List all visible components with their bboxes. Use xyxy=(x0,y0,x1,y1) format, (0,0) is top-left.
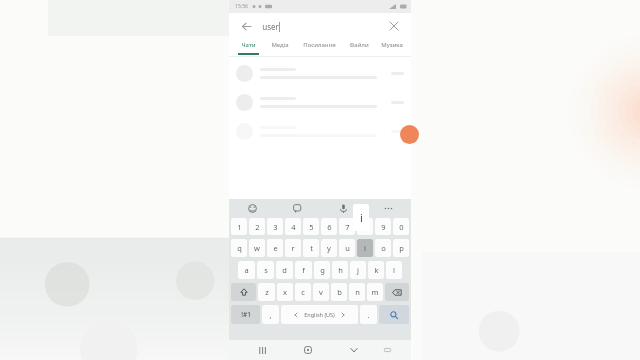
button[interactable]: 3 xyxy=(267,218,283,235)
button[interactable]: !#1 xyxy=(231,305,260,324)
button[interactable]: Back xyxy=(237,17,255,35)
button[interactable]: 0 xyxy=(393,218,409,235)
button[interactable]: a xyxy=(238,261,255,279)
button[interactable]: l xyxy=(386,261,402,279)
staticText: 6 xyxy=(327,222,332,232)
button[interactable]: Recents xyxy=(254,342,270,358)
button[interactable] xyxy=(229,88,411,117)
button[interactable]: j xyxy=(350,261,366,279)
staticText: i xyxy=(364,243,366,253)
staticText: 3 xyxy=(273,222,278,232)
button[interactable]: Voice input xyxy=(336,201,350,215)
button[interactable]: i xyxy=(357,239,373,257)
staticText: p xyxy=(399,243,404,253)
button[interactable]: e xyxy=(267,239,283,257)
staticText: 2 xyxy=(255,222,260,232)
button[interactable]: Keyboard xyxy=(380,343,394,357)
button[interactable]: c xyxy=(295,283,311,301)
button[interactable]: 9 xyxy=(375,218,391,235)
button[interactable]: f xyxy=(295,261,312,279)
button[interactable]: 1 xyxy=(231,218,247,235)
button[interactable]: 7 xyxy=(339,218,355,235)
staticText: r xyxy=(291,243,295,253)
button[interactable]: . xyxy=(360,305,377,324)
button[interactable]: r xyxy=(285,239,301,257)
staticText: x xyxy=(283,287,287,297)
button[interactable]: Clear search xyxy=(385,17,403,35)
button[interactable]: v xyxy=(313,283,329,301)
staticText: !#1 xyxy=(241,310,251,319)
staticText: a xyxy=(244,265,249,275)
button[interactable]: 6 xyxy=(321,218,337,235)
button[interactable]: Медіа xyxy=(264,39,296,56)
button[interactable]: k xyxy=(368,261,384,279)
button[interactable]: w xyxy=(249,239,265,257)
button[interactable] xyxy=(229,117,411,146)
button[interactable]: p xyxy=(393,239,409,257)
button[interactable]: Чати xyxy=(232,39,264,56)
button[interactable]: z xyxy=(258,283,275,301)
button[interactable]: Stickers xyxy=(290,201,304,215)
staticText: q xyxy=(237,243,242,253)
button[interactable]: Посилання xyxy=(296,39,342,56)
staticText: . xyxy=(367,310,370,320)
button[interactable] xyxy=(229,59,411,88)
button[interactable]: Backspace xyxy=(385,283,409,301)
button[interactable]: English (US) xyxy=(281,305,358,324)
button[interactable]: b xyxy=(331,283,347,301)
staticText: Посилання xyxy=(303,41,336,49)
staticText: z xyxy=(265,287,269,297)
staticText: m xyxy=(371,287,379,297)
button[interactable]: d xyxy=(276,261,293,279)
button[interactable]: Emoji xyxy=(245,201,259,215)
staticText: user xyxy=(262,21,279,32)
button[interactable]: 5 xyxy=(303,218,319,235)
button[interactable]: g xyxy=(314,261,330,279)
staticText: 7 xyxy=(345,222,350,232)
button[interactable]: m xyxy=(367,283,383,301)
button[interactable]: Файли xyxy=(342,39,375,56)
staticText: Медіа xyxy=(271,41,289,49)
staticText: h xyxy=(338,265,343,275)
button[interactable]: 4 xyxy=(285,218,301,235)
staticText: y xyxy=(327,243,331,253)
button[interactable]: n xyxy=(349,283,365,301)
staticText: 5 xyxy=(309,222,314,232)
staticText: Чати xyxy=(241,41,256,49)
staticText: g xyxy=(320,265,325,275)
button[interactable]: t xyxy=(303,239,319,257)
staticText: 15:56 xyxy=(235,3,248,10)
staticText: 4 xyxy=(291,222,296,232)
button[interactable]: 2 xyxy=(249,218,265,235)
staticText: c xyxy=(301,287,305,297)
button[interactable]: Shift xyxy=(231,283,256,301)
staticText: , xyxy=(269,310,272,320)
staticText: j xyxy=(357,265,359,275)
staticText: v xyxy=(319,287,323,297)
button[interactable]: u xyxy=(339,239,355,257)
button[interactable]: Home xyxy=(300,342,316,358)
button[interactable]: Музика xyxy=(375,39,408,56)
button[interactable]: More options xyxy=(381,201,395,215)
button[interactable]: x xyxy=(277,283,293,301)
staticText: f xyxy=(302,265,305,275)
staticText: k xyxy=(374,265,379,275)
staticText: English (US) xyxy=(304,311,335,318)
staticText: b xyxy=(337,287,342,297)
staticText: 1 xyxy=(237,222,242,232)
button[interactable]: s xyxy=(257,261,274,279)
staticText: o xyxy=(381,243,386,253)
button[interactable]: o xyxy=(375,239,391,257)
button[interactable]: Search xyxy=(379,305,409,324)
button[interactable]: y xyxy=(321,239,337,257)
staticText: u xyxy=(345,243,350,253)
button[interactable]: , xyxy=(262,305,279,324)
staticText: Музика xyxy=(381,41,403,49)
button[interactable]: Hide keyboard xyxy=(346,342,362,358)
staticText: i xyxy=(360,210,363,225)
button[interactable]: h xyxy=(332,261,348,279)
staticText: l xyxy=(393,265,395,275)
button[interactable]: 8 xyxy=(357,218,373,235)
button[interactable]: q xyxy=(231,239,247,257)
staticText: Файли xyxy=(349,41,369,49)
